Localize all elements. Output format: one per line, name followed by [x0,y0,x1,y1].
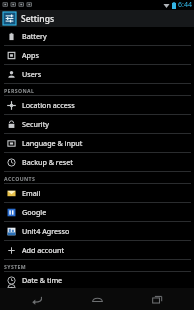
staticText: Security [22,119,49,129]
staticText: Users [22,69,42,79]
staticText: Apps [22,50,39,60]
staticText: Email [22,188,41,198]
staticText: Battery [22,31,47,41]
staticText: Unit4 Agresso [22,226,70,236]
staticText: Date & time [22,275,63,285]
button[interactable]: Unit4 Agresso [0,222,194,240]
button[interactable]: Location access [0,96,194,114]
staticText: SYSTEM [4,263,27,270]
button[interactable]: Users [0,65,194,83]
button[interactable]: Back [14,288,60,310]
staticText: 6:44 [178,0,192,10]
button[interactable]: Language & input [0,134,194,152]
button[interactable]: Apps [0,46,194,64]
button[interactable]: Add account [0,241,194,259]
button[interactable]: Security [0,115,194,133]
staticText: Google [22,207,47,217]
staticText: Backup & reset [22,157,73,167]
button[interactable]: Backup & reset [0,153,194,171]
staticText: Location access [22,100,75,110]
button[interactable]: Google [0,203,194,221]
button[interactable]: Recent apps [134,288,180,310]
staticText: Settings [21,13,55,25]
button[interactable]: Email [0,184,194,202]
button[interactable]: Date & time [0,272,194,288]
button[interactable]: Battery [0,27,194,45]
staticText: ACCOUNTS [4,175,36,182]
button[interactable]: Settings [0,10,194,27]
staticText: Add account [22,245,65,255]
staticText: PERSONAL [4,87,35,94]
staticText: Language & input [22,138,83,148]
button[interactable]: Home [74,288,120,310]
